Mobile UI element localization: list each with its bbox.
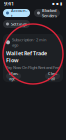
staticText: ▪ ▪ ▮ bbox=[52, 1, 62, 6]
staticText: 9:41 bbox=[4, 0, 14, 7]
button[interactable]: Settings bbox=[3, 20, 30, 28]
button[interactable]: Account bbox=[3, 9, 30, 17]
staticText: Subscription · 2 min ago bbox=[12, 37, 46, 48]
button[interactable]: Clear all bbox=[45, 73, 60, 79]
staticText: Clear all bbox=[48, 71, 57, 81]
staticText: Wallet Ref Trade Flow bbox=[6, 50, 47, 64]
button[interactable]: Blocked Senders bbox=[34, 9, 60, 17]
staticText: Settings bbox=[11, 21, 27, 27]
staticText: Account bbox=[11, 8, 27, 18]
staticText: Pay Now On Flight Rent and Fee bbox=[6, 65, 59, 70]
button[interactable]: Manage bbox=[6, 73, 21, 79]
staticText: Blocked Senders bbox=[42, 8, 57, 18]
staticText: Manage bbox=[9, 71, 18, 81]
